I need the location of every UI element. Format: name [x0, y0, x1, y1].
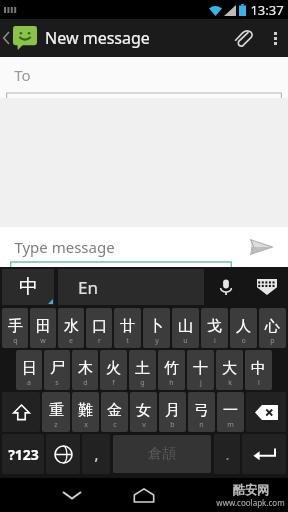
staticText: 木: [78, 359, 93, 378]
button[interactable]: 火: [100, 350, 127, 390]
staticText: 人: [236, 317, 251, 336]
staticText: .: [225, 444, 230, 464]
button[interactable]: 水: [58, 308, 84, 348]
button[interactable]: Enter: [242, 434, 286, 474]
staticText: c: [113, 420, 117, 430]
staticText: j: [200, 378, 202, 388]
button[interactable]: 弓: [188, 392, 215, 432]
button[interactable]: 戈: [201, 308, 228, 348]
staticText: a: [27, 378, 31, 388]
button[interactable]: 倉頡: [113, 435, 211, 473]
button[interactable]: 口: [86, 308, 112, 348]
button[interactable]: 卜: [143, 308, 170, 348]
staticText: 卜: [149, 317, 164, 336]
staticText: 一: [223, 401, 238, 420]
staticText: 心: [265, 317, 280, 336]
button[interactable]: Send: [234, 227, 288, 267]
staticText: ?123: [8, 445, 39, 464]
button[interactable]: 土: [129, 350, 156, 390]
staticText: y: [155, 336, 159, 346]
staticText: l: [258, 378, 260, 388]
staticText: 酷安网: [233, 482, 269, 497]
button[interactable]: Shift: [2, 392, 40, 432]
button[interactable]: 竹: [158, 350, 185, 390]
button[interactable]: 尸: [44, 350, 70, 390]
staticText: f: [112, 378, 115, 388]
button[interactable]: 中: [2, 269, 54, 305]
staticText: b: [170, 420, 175, 430]
staticText: 土: [135, 359, 150, 378]
staticText: n: [199, 420, 204, 430]
button[interactable]: 心: [259, 308, 286, 348]
button[interactable]: 山: [172, 308, 199, 348]
button[interactable]: Change language: [46, 434, 80, 474]
staticText: 日: [22, 359, 37, 378]
button[interactable]: 重: [42, 392, 70, 432]
staticText: 口: [92, 317, 107, 336]
button[interactable]: .: [214, 434, 240, 474]
staticText: d: [83, 378, 88, 388]
button[interactable]: 大: [216, 350, 243, 390]
button[interactable]: 一: [217, 392, 244, 432]
staticText: 十: [193, 359, 208, 378]
staticText: 難: [78, 401, 93, 420]
staticText: 山: [178, 317, 193, 336]
staticText: ,: [94, 444, 99, 464]
button[interactable]: Type message: [0, 227, 234, 267]
staticText: 13:37: [250, 1, 284, 19]
staticText: h: [169, 378, 174, 388]
button[interactable]: Home: [124, 478, 164, 512]
staticText: g: [140, 378, 145, 388]
staticText: p: [270, 336, 275, 346]
button[interactable]: ?123: [2, 434, 44, 474]
staticText: 中: [19, 275, 38, 299]
staticText: o: [241, 336, 246, 346]
staticText: 月: [165, 401, 180, 420]
staticText: 弓: [194, 401, 209, 420]
button[interactable]: To: [0, 57, 288, 93]
button[interactable]: Attach: [224, 19, 262, 57]
button[interactable]: 手: [2, 308, 28, 348]
staticText: q: [13, 336, 18, 346]
button[interactable]: Hide keyboard: [52, 478, 92, 512]
button[interactable]: ,: [82, 434, 110, 474]
staticText: i: [214, 336, 216, 346]
button[interactable]: More options: [262, 19, 288, 57]
staticText: k: [228, 378, 232, 388]
button[interactable]: New message: [0, 19, 156, 57]
button[interactable]: Backspace: [246, 392, 286, 432]
button[interactable]: 十: [187, 350, 214, 390]
staticText: u: [183, 336, 188, 346]
staticText: w: [40, 336, 46, 346]
staticText: Type message: [14, 237, 115, 257]
staticText: e: [69, 336, 73, 346]
staticText: z: [54, 420, 58, 430]
button[interactable]: 女: [130, 392, 157, 432]
button[interactable]: 廿: [114, 308, 141, 348]
staticText: New message: [45, 27, 150, 49]
staticText: r: [98, 336, 101, 346]
button[interactable]: 木: [72, 350, 98, 390]
button[interactable]: 中: [245, 350, 272, 390]
button[interactable]: 月: [159, 392, 186, 432]
staticText: 金: [107, 401, 122, 420]
button[interactable]: Voice input: [206, 267, 246, 307]
staticText: s: [55, 378, 59, 388]
button[interactable]: Hide keyboard: [246, 267, 288, 307]
staticText: 女: [136, 401, 151, 420]
staticText: 廿: [120, 317, 135, 336]
staticText: www.coolapk.com: [216, 497, 285, 508]
staticText: 倉頡: [148, 445, 176, 463]
button[interactable]: 難: [72, 392, 99, 432]
staticText: 中: [251, 359, 266, 378]
staticText: v: [142, 420, 146, 430]
button[interactable]: 日: [16, 350, 42, 390]
staticText: 水: [64, 317, 79, 336]
staticText: 田: [36, 317, 51, 336]
button[interactable]: 人: [230, 308, 257, 348]
button[interactable]: 金: [101, 392, 128, 432]
staticText: 重: [49, 401, 64, 420]
button[interactable]: En: [58, 269, 204, 305]
staticText: 尸: [50, 359, 65, 378]
button[interactable]: 田: [30, 308, 56, 348]
